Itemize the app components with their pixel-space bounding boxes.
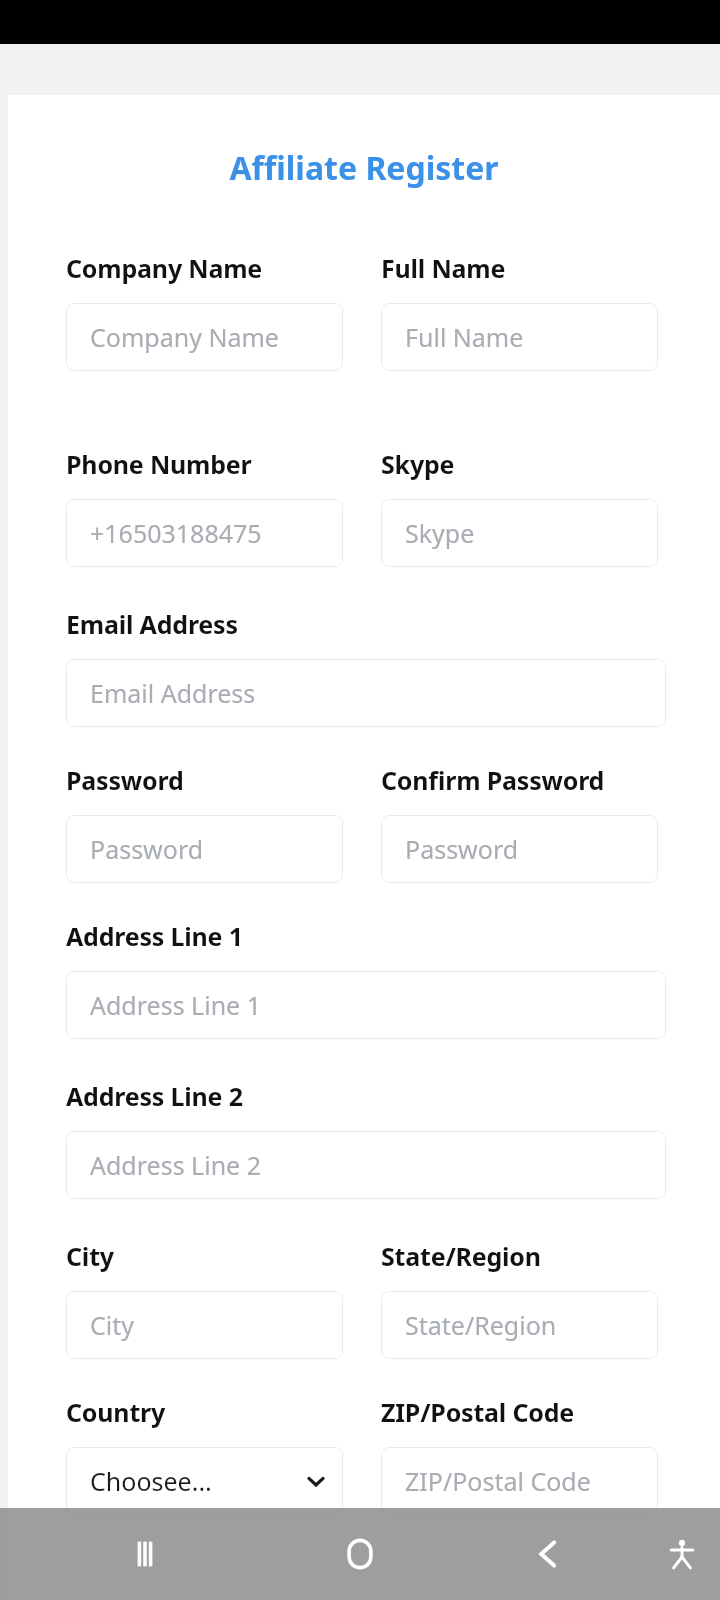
button[interactable]: Choosee... bbox=[66, 1447, 343, 1515]
staticText: Skype bbox=[381, 447, 455, 481]
button[interactable]: Address Line 2 bbox=[66, 1131, 666, 1199]
button[interactable]: State/Region bbox=[381, 1291, 658, 1359]
button[interactable]: Recent apps bbox=[109, 1518, 181, 1590]
staticText: Choosee... bbox=[90, 1464, 212, 1498]
button[interactable]: Password bbox=[381, 815, 658, 883]
button[interactable]: Skype bbox=[381, 499, 658, 567]
button[interactable]: Company Name bbox=[66, 303, 343, 371]
staticText: Address Line 2 bbox=[90, 1148, 262, 1182]
staticText: Country bbox=[66, 1395, 166, 1429]
staticText: Email Address bbox=[90, 676, 256, 710]
button[interactable]: Password bbox=[66, 815, 343, 883]
staticText: State/Region bbox=[405, 1308, 557, 1342]
staticText: Full Name bbox=[381, 251, 506, 285]
staticText: Password bbox=[405, 832, 519, 866]
staticText: Skype bbox=[405, 516, 475, 550]
staticText: ZIP/Postal Code bbox=[381, 1395, 574, 1429]
staticText: City bbox=[90, 1308, 135, 1342]
staticText: City bbox=[66, 1239, 114, 1273]
staticText: Email Address bbox=[66, 607, 238, 641]
staticText: Confirm Password bbox=[381, 763, 605, 797]
staticText: ZIP/Postal Code bbox=[405, 1464, 591, 1498]
button[interactable]: Address Line 1 bbox=[66, 971, 666, 1039]
staticText: Company Name bbox=[90, 320, 279, 354]
staticText: Password bbox=[90, 832, 204, 866]
button[interactable]: ZIP/Postal Code bbox=[381, 1447, 658, 1515]
button[interactable]: City bbox=[66, 1291, 343, 1359]
staticText: Company Name bbox=[66, 251, 263, 285]
staticText: +16503188475 bbox=[90, 516, 262, 550]
staticText: Address Line 2 bbox=[66, 1079, 243, 1113]
button[interactable]: Full Name bbox=[381, 303, 658, 371]
staticText: Affiliate Register bbox=[8, 146, 720, 190]
button[interactable]: Back bbox=[512, 1518, 584, 1590]
staticText: Address Line 1 bbox=[90, 988, 262, 1022]
staticText: Full Name bbox=[405, 320, 524, 354]
staticText: State/Region bbox=[381, 1239, 541, 1273]
staticText: Phone Number bbox=[66, 447, 252, 481]
button[interactable]: Accessibility bbox=[652, 1524, 712, 1584]
button[interactable]: Email Address bbox=[66, 659, 666, 727]
staticText: Password bbox=[66, 763, 184, 797]
button[interactable]: Home bbox=[324, 1518, 396, 1590]
staticText: Address Line 1 bbox=[66, 919, 243, 953]
button[interactable]: +16503188475 bbox=[66, 499, 343, 567]
